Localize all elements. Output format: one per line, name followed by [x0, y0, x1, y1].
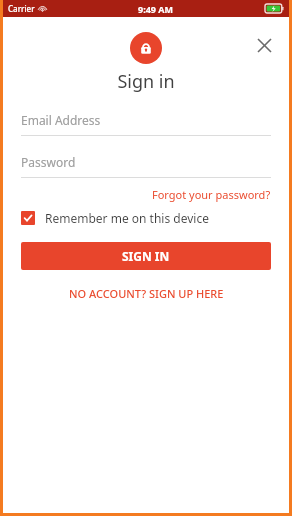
staticText: Carrier: [8, 3, 35, 14]
staticText: Password: [21, 154, 76, 170]
button[interactable]: Remember me on this device: [21, 210, 271, 226]
button[interactable]: Secure sign in: [130, 32, 162, 64]
staticText: SIGN IN: [122, 248, 170, 264]
staticText: NO ACCOUNT? SIGN UP HERE: [69, 286, 224, 301]
button[interactable]: Forgot your password?: [150, 184, 273, 205]
button[interactable]: Email Address: [21, 112, 271, 136]
button[interactable]: Close: [251, 32, 277, 58]
staticText: 9:49 AM: [138, 3, 174, 15]
button[interactable]: NO ACCOUNT? SIGN UP HERE: [63, 283, 230, 304]
button[interactable]: SIGN IN: [21, 242, 271, 270]
staticText: Forgot your password?: [152, 187, 271, 202]
staticText: Email Address: [21, 112, 101, 128]
staticText: Sign in: [3, 69, 289, 94]
staticText: Remember me on this device: [45, 210, 209, 226]
button[interactable]: Password: [21, 154, 271, 178]
